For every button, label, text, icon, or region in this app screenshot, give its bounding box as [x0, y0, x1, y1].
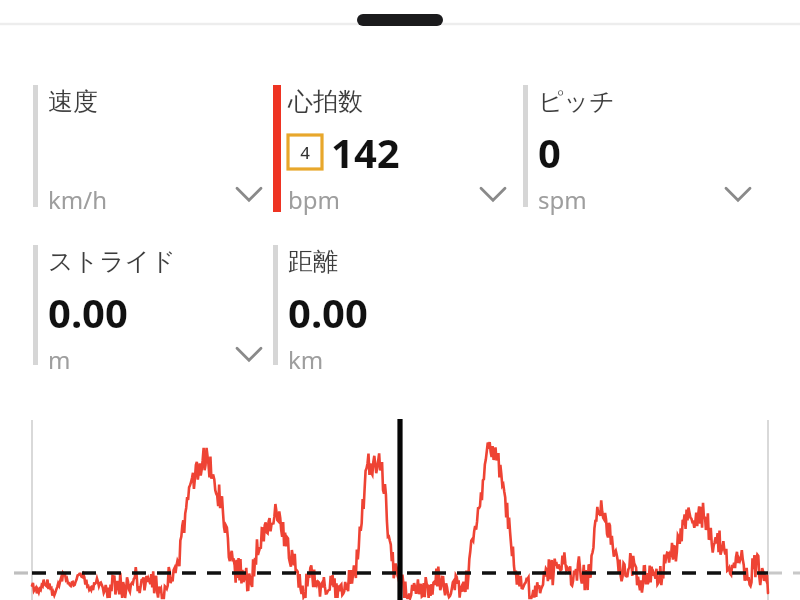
button[interactable]: Current page indicator [357, 14, 443, 26]
staticText: 速度 [48, 86, 98, 117]
staticText: bpm [288, 183, 340, 216]
staticText: 心拍数 [288, 86, 363, 117]
staticText: m [48, 343, 71, 376]
staticText: 142 [331, 125, 400, 179]
staticText: 0 [538, 125, 561, 179]
button[interactable]: Expand ストライド [234, 341, 264, 367]
staticText: km [288, 343, 324, 376]
button[interactable]: Expand 速度 [234, 181, 264, 207]
button[interactable]: Heart rate graph [0, 415, 800, 600]
button[interactable]: Expand ピッチ [723, 181, 753, 207]
staticText: 距離 [288, 246, 338, 277]
staticText: 0.00 [48, 285, 128, 339]
staticText: 0.00 [288, 285, 368, 339]
staticText: 4 [300, 141, 310, 164]
staticText: spm [538, 183, 587, 216]
button[interactable]: Expand 心拍数 [478, 181, 508, 207]
staticText: ストライド [48, 246, 176, 277]
staticText: ピッチ [538, 86, 615, 117]
staticText: km/h [48, 183, 108, 216]
